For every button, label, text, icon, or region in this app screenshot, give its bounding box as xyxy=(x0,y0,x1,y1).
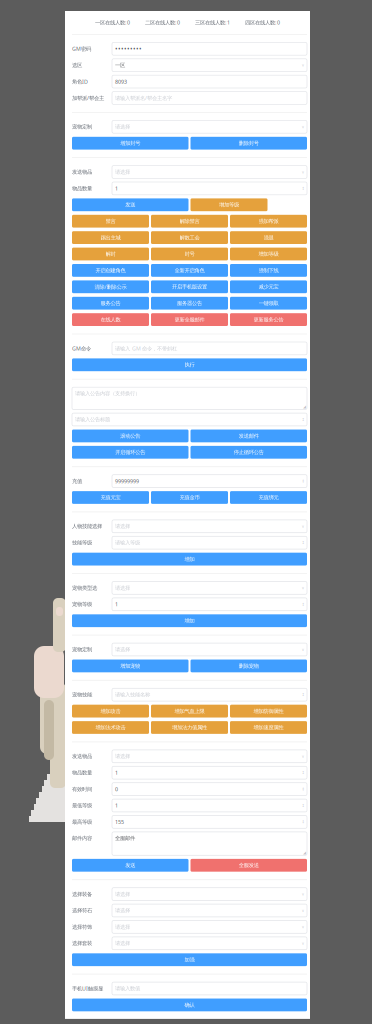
button[interactable]: 一键领取 xyxy=(230,297,307,310)
staticText: 一键领取 xyxy=(258,300,278,306)
button[interactable]: 增加封号 xyxy=(72,137,188,150)
button[interactable]: 请输入技能名称 xyxy=(112,688,307,701)
button[interactable]: 增加攻击 xyxy=(72,705,149,717)
button[interactable]: 0 xyxy=(112,783,307,795)
staticText: 请选择 xyxy=(115,753,130,760)
staticText: 请选择 xyxy=(115,891,130,897)
staticText: ↕ xyxy=(301,602,304,606)
button[interactable]: 请选择 xyxy=(112,937,307,950)
button[interactable]: 一区 xyxy=(112,59,307,72)
staticText: 服务公告 xyxy=(100,300,120,306)
staticText: 充值元宝 xyxy=(100,494,120,501)
button[interactable]: 充值金币 xyxy=(151,491,228,504)
button[interactable]: 增加等级 xyxy=(230,248,307,260)
button[interactable]: 请选择 xyxy=(112,750,307,763)
button[interactable]: 解除禁言 xyxy=(151,215,228,228)
button[interactable]: 在线人数 xyxy=(72,313,149,326)
button[interactable]: 1 xyxy=(112,182,307,195)
button[interactable]: 服务器公告 xyxy=(151,297,228,310)
button[interactable]: 发送 xyxy=(72,198,188,211)
staticText: 8093 xyxy=(115,78,127,85)
button[interactable]: 全服发送 xyxy=(190,859,307,872)
button[interactable]: 请选择 xyxy=(112,888,307,900)
button[interactable]: 执行 xyxy=(72,358,307,371)
button[interactable]: 发送 xyxy=(72,859,188,872)
button[interactable]: 请输入等级 xyxy=(112,536,307,549)
staticText: 充值 xyxy=(72,478,82,484)
staticText: 开启循环公告 xyxy=(115,449,145,456)
button[interactable]: 解散工会 xyxy=(151,231,228,244)
button[interactable]: 服务公告 xyxy=(72,297,149,310)
button[interactable]: 禁言 xyxy=(72,215,149,228)
button[interactable]: 1 xyxy=(112,799,307,812)
staticText: 加强 xyxy=(184,956,194,963)
staticText: 强制下线 xyxy=(258,267,278,274)
button[interactable]: 加强 xyxy=(72,953,307,966)
button[interactable]: GM密码 xyxy=(112,42,307,55)
button[interactable]: 请输入帮派名/帮会主名字 xyxy=(112,92,307,104)
staticText: ∨ xyxy=(301,524,304,528)
button[interactable]: 请选择 xyxy=(112,520,307,533)
button[interactable]: 滚动公告 xyxy=(72,429,188,442)
button[interactable]: 充值绑元 xyxy=(230,491,307,504)
button[interactable]: 增加法术攻击 xyxy=(72,721,149,734)
button[interactable]: 开启创建角色 xyxy=(72,264,149,277)
button[interactable]: 更新全服邮件 xyxy=(151,313,228,326)
button[interactable]: 1 xyxy=(112,766,307,779)
button[interactable]: 请选择 xyxy=(112,904,307,917)
button[interactable]: 强退 xyxy=(230,231,307,244)
button[interactable]: 删除宠物 xyxy=(190,659,307,672)
staticText: 请输入帮派名/帮会主名字 xyxy=(115,94,172,102)
button[interactable]: 请输入公告内容（支持换行） xyxy=(72,387,307,409)
button[interactable]: 增加防御属性 xyxy=(230,705,307,717)
button[interactable]: 请选择 xyxy=(112,643,307,656)
staticText: ∨ xyxy=(301,754,304,758)
button[interactable]: 确认 xyxy=(72,998,307,1011)
button[interactable]: 减少元宝 xyxy=(230,280,307,293)
button[interactable]: 99999999 xyxy=(112,475,307,487)
staticText: 发送物品 xyxy=(72,753,92,760)
staticText: 增加等级 xyxy=(258,251,278,257)
button[interactable]: 增加速度属性 xyxy=(230,721,307,734)
button[interactable]: 开启手机版设置 xyxy=(151,280,228,293)
button[interactable]: 请选择 xyxy=(112,581,307,594)
button[interactable]: 请选择 xyxy=(112,920,307,933)
staticText: 请选择 xyxy=(115,523,130,530)
button[interactable]: 请输入公告标题 xyxy=(72,413,307,426)
button[interactable]: 8093 xyxy=(112,75,307,88)
button[interactable]: 封号 xyxy=(151,248,228,260)
button[interactable]: 更新服务公告 xyxy=(230,313,307,326)
button[interactable]: 增加气血上限 xyxy=(151,705,228,717)
staticText: 执行 xyxy=(184,361,194,368)
staticText: 在线人数 xyxy=(100,316,120,323)
button[interactable]: 请选择 xyxy=(112,120,307,133)
button[interactable]: 发送邮件 xyxy=(190,429,307,442)
button[interactable]: 强加帮派 xyxy=(230,215,307,228)
button[interactable]: 155 xyxy=(112,815,307,828)
button[interactable]: 请输入数值 xyxy=(112,982,307,995)
button[interactable]: 增加 xyxy=(72,614,307,627)
button[interactable]: 强制下线 xyxy=(230,264,307,277)
button[interactable]: 充值元宝 xyxy=(72,491,149,504)
button[interactable]: 清除/删除公示 xyxy=(72,280,149,293)
button[interactable]: 增加等级 xyxy=(190,198,267,211)
staticText: 解除禁言 xyxy=(179,218,199,224)
button[interactable]: 停止循环公告 xyxy=(190,446,307,459)
staticText: 增加攻击 xyxy=(100,708,120,714)
button[interactable]: 增加宠物 xyxy=(72,659,188,672)
button[interactable]: 1 xyxy=(112,598,307,611)
button[interactable]: 解封 xyxy=(72,248,149,260)
button[interactable]: 删除封号 xyxy=(190,137,307,150)
staticText: 请选择 xyxy=(115,123,130,130)
staticText: 增加封号 xyxy=(120,140,140,146)
button[interactable]: 增加法力值属性 xyxy=(151,721,228,734)
button[interactable]: 增加 xyxy=(72,553,307,565)
button[interactable]: 开启循环公告 xyxy=(72,446,188,459)
button[interactable]: 请输入 GM 命令，不带斜杠 xyxy=(112,342,307,355)
staticText: ∨ xyxy=(301,124,304,129)
button[interactable]: 全新开启角色 xyxy=(151,264,228,277)
button[interactable]: 全服邮件 xyxy=(112,832,307,855)
button[interactable]: 踢出主城 xyxy=(72,231,149,244)
staticText: ••••••••• xyxy=(115,44,142,53)
button[interactable]: 请选择 xyxy=(112,166,307,178)
